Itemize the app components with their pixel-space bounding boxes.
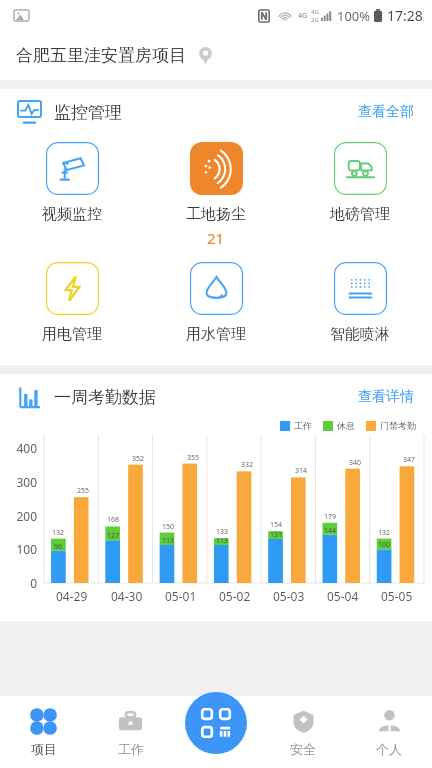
button[interactable]: 地磅管理 bbox=[288, 135, 432, 231]
staticText: 05-05 bbox=[381, 588, 413, 604]
button[interactable]: 智能喷淋 bbox=[288, 255, 432, 351]
staticText: 监控管理 bbox=[54, 102, 122, 123]
button[interactable]: 用电管理 bbox=[0, 255, 144, 351]
staticText: 查看全部 bbox=[358, 103, 414, 121]
staticText: 314 bbox=[295, 466, 308, 476]
staticText: 个人 bbox=[376, 741, 402, 757]
staticText: 133 bbox=[216, 527, 229, 537]
button[interactable]: 用水管理 bbox=[144, 255, 288, 351]
button[interactable]: 视频监控 bbox=[0, 135, 144, 231]
staticText: 100 bbox=[16, 541, 37, 557]
staticText: 休息 bbox=[337, 420, 355, 431]
staticText: 安全 bbox=[290, 741, 316, 757]
staticText: 347 bbox=[403, 455, 416, 465]
button[interactable]: 查看详情 bbox=[354, 382, 418, 412]
staticText: 智能喷淋 bbox=[330, 325, 390, 344]
staticText: 340 bbox=[349, 458, 362, 468]
staticText: 门禁考勤 bbox=[380, 420, 416, 431]
staticText: 154 bbox=[270, 520, 283, 530]
staticText: 地磅管理 bbox=[330, 205, 390, 224]
staticText: 355 bbox=[187, 453, 200, 463]
staticText: 332 bbox=[241, 460, 254, 470]
staticText: 05-04 bbox=[327, 588, 359, 604]
staticText: 132 bbox=[378, 528, 391, 538]
staticText: 200 bbox=[16, 508, 37, 524]
staticText: 0 bbox=[30, 575, 37, 591]
staticText: 400 bbox=[16, 440, 37, 456]
staticText: 352 bbox=[132, 454, 145, 464]
staticText: 168 bbox=[107, 515, 120, 525]
staticText: 127 bbox=[107, 531, 120, 541]
staticText: 视频监控 bbox=[42, 205, 102, 224]
staticText: 17:28 bbox=[387, 6, 423, 25]
staticText: 300 bbox=[16, 474, 37, 490]
staticText: 05-03 bbox=[273, 588, 305, 604]
button[interactable]: 个人 bbox=[346, 696, 432, 768]
button[interactable]: 安全 bbox=[260, 696, 346, 768]
staticText: 21 bbox=[207, 228, 225, 248]
button[interactable]: 工作 bbox=[87, 696, 174, 768]
staticText: 工作 bbox=[294, 420, 312, 431]
staticText: 150 bbox=[162, 522, 175, 532]
button[interactable]: 查看全部 bbox=[354, 97, 418, 127]
staticText: 一周考勤数据 bbox=[54, 387, 156, 408]
button[interactable]: Location bbox=[193, 43, 217, 67]
staticText: 100% bbox=[337, 7, 371, 25]
staticText: 查看详情 bbox=[358, 388, 414, 406]
staticText: 131 bbox=[270, 530, 283, 540]
staticText: 04-29 bbox=[56, 588, 88, 604]
staticText: 132 bbox=[52, 528, 65, 538]
staticText: 工作 bbox=[118, 741, 144, 757]
staticText: 工地扬尘 bbox=[186, 205, 246, 224]
staticText: 05-01 bbox=[165, 588, 197, 604]
staticText: 04-30 bbox=[111, 588, 143, 604]
staticText: 项目 bbox=[31, 741, 57, 757]
staticText: 2G bbox=[311, 16, 319, 24]
staticText: 4G bbox=[298, 11, 308, 21]
button[interactable]: 工地扬尘 bbox=[144, 135, 288, 255]
button[interactable]: Scan QR code bbox=[185, 692, 247, 754]
staticText: 113 bbox=[216, 536, 229, 546]
staticText: 100 bbox=[378, 540, 391, 550]
staticText: 255 bbox=[77, 486, 90, 496]
staticText: 用水管理 bbox=[186, 325, 246, 344]
staticText: 4G bbox=[311, 8, 319, 16]
button[interactable]: 项目 bbox=[0, 696, 87, 768]
staticText: 113 bbox=[162, 536, 175, 546]
staticText: 144 bbox=[324, 526, 337, 536]
staticText: 用电管理 bbox=[42, 325, 102, 344]
staticText: 179 bbox=[324, 512, 337, 522]
staticText: 05-02 bbox=[219, 588, 251, 604]
staticText: 96 bbox=[54, 542, 63, 552]
staticText: 合肥五里洼安置房项目 bbox=[16, 45, 186, 66]
